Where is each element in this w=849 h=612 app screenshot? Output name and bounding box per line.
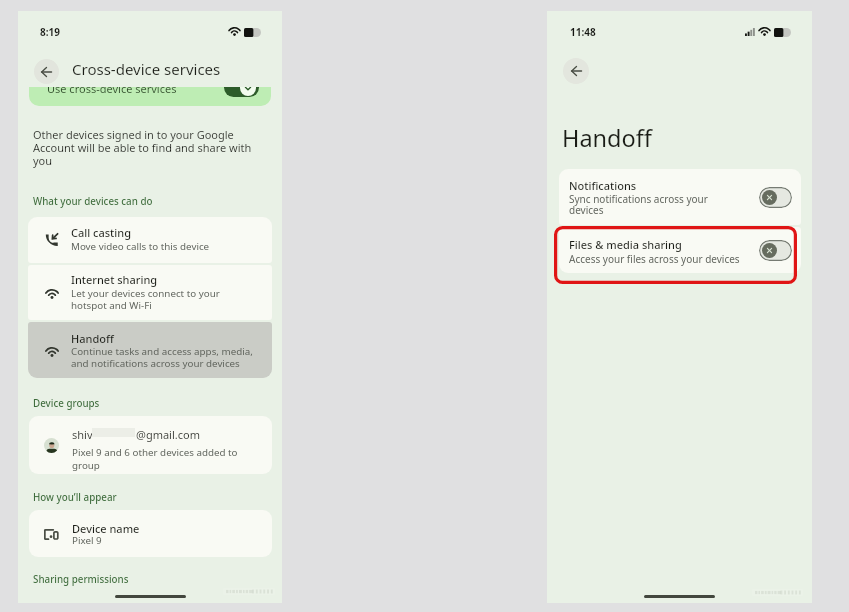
button[interactable]: Device name (29, 510, 272, 557)
staticText: 8:19 (40, 25, 60, 39)
staticText: Let your devices connect to your hotspot… (71, 287, 220, 312)
button[interactable]: Files & media sharing (559, 227, 801, 273)
button[interactable]: Toggle Files & media sharing (759, 240, 792, 261)
button[interactable]: shiv (29, 416, 272, 474)
staticText: Other devices signed in to your Google A… (33, 127, 252, 169)
staticText: Pixel 9 (72, 534, 102, 547)
staticText: @gmail.com (136, 427, 200, 442)
staticText: Internet sharing (71, 272, 158, 287)
button[interactable]: Back (563, 58, 589, 84)
staticText: Sync notifications across your devices (569, 192, 708, 217)
staticText: 11:48 (570, 25, 596, 39)
staticText: How you’ll appear (33, 491, 117, 504)
button[interactable]: Internet sharing (28, 265, 272, 320)
button[interactable]: Call casting (28, 217, 272, 263)
staticText: Access your files across your devices (569, 252, 740, 266)
staticText: Move video calls to this device (71, 240, 210, 253)
staticText: Sharing permissions (33, 573, 129, 586)
staticText: shiv (72, 427, 93, 442)
button[interactable]: Toggle Notifications (759, 187, 792, 208)
staticText: Device groups (33, 397, 100, 410)
staticText: Handoff (71, 331, 114, 346)
button[interactable]: Handoff (28, 322, 272, 378)
staticText: Notifications (569, 178, 637, 193)
staticText: What your devices can do (33, 195, 153, 208)
staticText: Cross-device services (72, 59, 221, 79)
staticText: Call casting (71, 225, 132, 240)
staticText: Device name (72, 521, 140, 536)
staticText: Use cross-device services (47, 87, 177, 96)
button[interactable]: Use cross-device services (29, 87, 271, 106)
staticText: Handoff (562, 122, 652, 154)
staticText: Pixel 9 and 6 other devices added to gro… (72, 446, 238, 472)
button[interactable]: Back (34, 59, 59, 84)
button[interactable]: Notifications (559, 169, 801, 225)
staticText: Files & media sharing (569, 237, 682, 252)
staticText: Continue tasks and access apps, media, a… (71, 345, 253, 370)
